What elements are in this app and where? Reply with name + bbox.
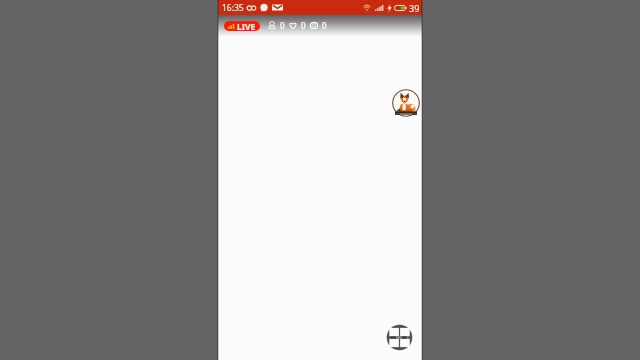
staticText: 0 (301, 20, 306, 31)
button[interactable]: Likes (289, 20, 306, 31)
staticText: 0 (280, 20, 285, 31)
button[interactable]: Viewers (268, 20, 285, 31)
button[interactable]: Recorder watermark (386, 324, 413, 351)
staticText: 39 (409, 2, 420, 14)
button[interactable]: Comments (310, 20, 327, 31)
staticText: 0 (322, 20, 327, 31)
staticText: 16:35 (222, 2, 244, 14)
button[interactable]: LIVE (224, 21, 260, 31)
button[interactable]: Channel logo (392, 89, 420, 117)
staticText: LIVE (237, 21, 256, 31)
